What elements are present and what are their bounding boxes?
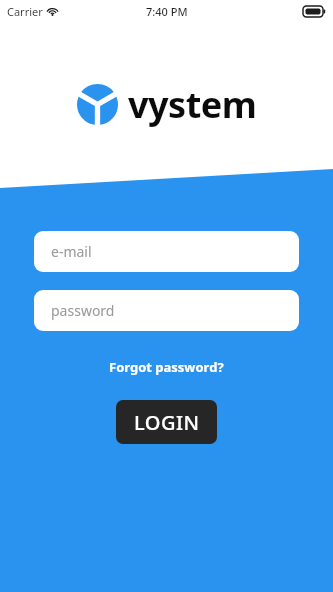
- staticText: Forgot password?: [109, 358, 224, 376]
- staticText: vystem: [128, 80, 257, 129]
- staticText: LOGIN: [134, 409, 200, 436]
- staticText: Carrier: [7, 4, 43, 19]
- staticText: e-mail: [51, 242, 92, 261]
- button[interactable]: Forgot password?: [103, 354, 230, 380]
- staticText: 7:40 PM: [146, 4, 188, 19]
- other: vystem logo: [77, 84, 118, 125]
- button[interactable]: password: [34, 290, 299, 331]
- button[interactable]: LOGIN: [116, 400, 217, 444]
- button[interactable]: e-mail: [34, 231, 299, 272]
- staticText: password: [51, 301, 115, 320]
